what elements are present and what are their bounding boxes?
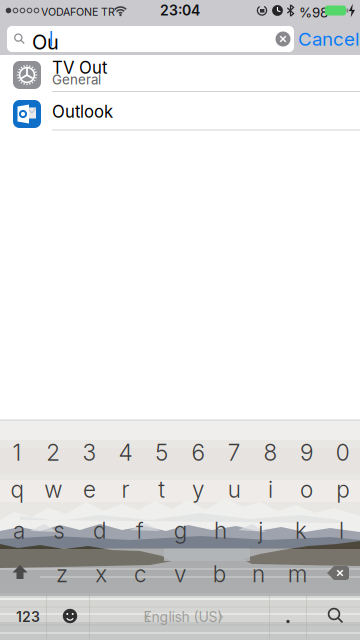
- button[interactable]: 3: [72, 433, 107, 472]
- staticText: l: [339, 517, 344, 544]
- button[interactable]: Space: [103, 595, 263, 639]
- staticText: j: [258, 517, 263, 544]
- staticText: h: [214, 517, 227, 544]
- staticText: Outlook: [52, 101, 113, 122]
- button[interactable]: Shift: [5, 560, 35, 584]
- staticText: 8: [263, 439, 277, 466]
- button[interactable]: Cancel: [294, 24, 360, 54]
- staticText: k: [295, 517, 307, 544]
- button[interactable]: y: [180, 470, 215, 509]
- staticText: a: [13, 517, 25, 544]
- button[interactable]: u: [217, 470, 252, 509]
- staticText: 4: [119, 439, 133, 466]
- staticText: f: [136, 517, 144, 544]
- staticText: o: [300, 476, 313, 503]
- button[interactable]: c: [123, 554, 158, 593]
- staticText: 2: [46, 439, 60, 466]
- staticText: 1: [12, 439, 21, 466]
- staticText: e: [83, 476, 96, 503]
- button[interactable]: 0: [325, 433, 360, 472]
- staticText: d: [93, 517, 106, 544]
- staticText: p: [336, 476, 349, 503]
- staticText: c: [134, 560, 147, 588]
- button[interactable]: k: [284, 511, 319, 550]
- button[interactable]: 8: [253, 433, 288, 472]
- staticText: i: [268, 476, 273, 503]
- staticText: 7: [228, 439, 241, 466]
- button[interactable]: TV Out: [0, 55, 360, 91]
- staticText: 3: [82, 439, 96, 466]
- staticText: r: [122, 476, 130, 503]
- button[interactable]: i: [253, 470, 288, 509]
- button[interactable]: s: [42, 511, 77, 550]
- staticText: Cancel: [298, 28, 360, 50]
- staticText: v: [174, 560, 186, 588]
- staticText: b: [213, 560, 226, 588]
- staticText: g: [174, 517, 187, 544]
- staticText: y: [192, 476, 204, 503]
- button[interactable]: 4: [108, 433, 143, 472]
- button[interactable]: w: [36, 470, 71, 509]
- button[interactable]: Period: [278, 606, 298, 626]
- button[interactable]: q: [0, 470, 34, 509]
- staticText: z: [56, 560, 68, 588]
- staticText: General: [52, 71, 101, 88]
- button[interactable]: Outlook: [0, 91, 360, 130]
- staticText: %98: [299, 4, 328, 21]
- button[interactable]: 7: [217, 433, 252, 472]
- staticText: TV Out: [52, 57, 107, 78]
- staticText: VODAFONE TR: [41, 5, 115, 18]
- staticText: x: [95, 560, 107, 588]
- staticText: Ou: [32, 30, 59, 54]
- button[interactable]: v: [162, 554, 197, 593]
- button[interactable]: 5: [144, 433, 179, 472]
- staticText: t: [158, 476, 165, 503]
- button[interactable]: 9: [289, 433, 324, 472]
- staticText: 123: [16, 608, 40, 625]
- button[interactable]: l: [324, 511, 359, 550]
- button[interactable]: Clear text: [274, 30, 292, 48]
- button[interactable]: x: [84, 554, 119, 593]
- button[interactable]: t: [144, 470, 179, 509]
- button[interactable]: n: [241, 554, 276, 593]
- button[interactable]: z: [44, 554, 79, 593]
- button[interactable]: g: [163, 511, 198, 550]
- button[interactable]: j: [243, 511, 278, 550]
- staticText: 6: [191, 439, 204, 466]
- button[interactable]: b: [202, 554, 237, 593]
- button[interactable]: a: [1, 511, 36, 550]
- staticText: 5: [155, 439, 168, 466]
- staticText: s: [53, 517, 65, 544]
- staticText: 9: [300, 439, 313, 466]
- staticText: w: [44, 476, 62, 503]
- staticText: English (US): [143, 608, 222, 625]
- button[interactable]: e: [72, 470, 107, 509]
- button[interactable]: 123: [6, 595, 50, 639]
- button[interactable]: Delete: [325, 561, 351, 585]
- staticText: 23:04: [160, 2, 200, 19]
- staticText: 0: [336, 439, 350, 466]
- button[interactable]: Emoji: [60, 606, 80, 626]
- button[interactable]: r: [108, 470, 143, 509]
- button[interactable]: 6: [180, 433, 215, 472]
- button[interactable]: p: [325, 470, 360, 509]
- staticText: m: [288, 560, 308, 588]
- button[interactable]: m: [280, 554, 315, 593]
- button[interactable]: h: [203, 511, 238, 550]
- button[interactable]: f: [122, 511, 157, 550]
- staticText: n: [252, 560, 265, 588]
- staticText: q: [10, 476, 23, 503]
- button[interactable]: o: [289, 470, 324, 509]
- button[interactable]: d: [82, 511, 117, 550]
- button[interactable]: 2: [36, 433, 71, 472]
- button[interactable]: 1: [0, 433, 34, 472]
- staticText: u: [228, 476, 241, 503]
- button[interactable]: Search: [325, 605, 347, 627]
